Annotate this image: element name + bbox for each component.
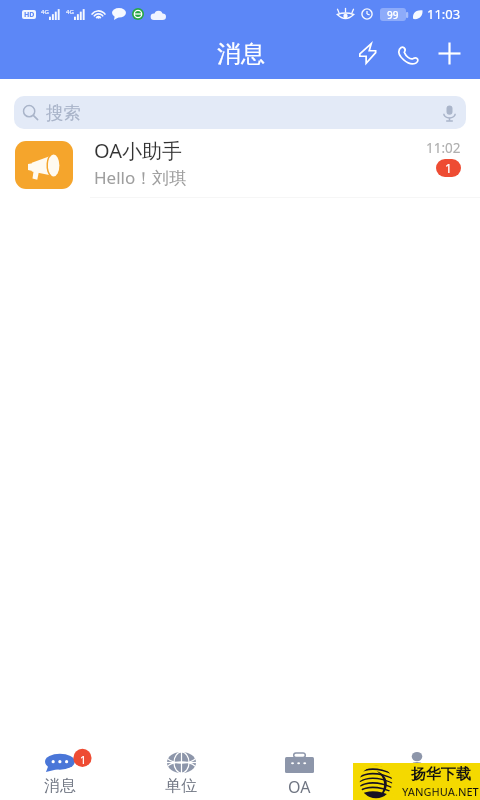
staticText: 11:03 bbox=[427, 5, 461, 23]
staticText: 扬华下载 bbox=[411, 765, 471, 784]
staticText: 搜索 bbox=[46, 102, 81, 124]
staticText: 4G bbox=[66, 8, 74, 16]
staticText: 11:02 bbox=[426, 139, 461, 157]
button[interactable]: 单位 bbox=[126, 738, 236, 800]
staticText: 1 bbox=[445, 160, 452, 176]
staticText: 消息 bbox=[44, 776, 76, 796]
staticText: 1 bbox=[80, 752, 87, 767]
staticText: Hello！刘琪 bbox=[94, 166, 187, 189]
button[interactable]: OA小助手 bbox=[0, 132, 480, 198]
staticText: 消息 bbox=[217, 39, 265, 69]
staticText: HD bbox=[24, 10, 35, 19]
staticText: OA小助手 bbox=[94, 137, 182, 164]
staticText: 我的 bbox=[401, 776, 433, 796]
button[interactable]: OA bbox=[244, 738, 354, 800]
button[interactable]: 1 bbox=[8, 738, 118, 800]
staticText: 单位 bbox=[165, 776, 197, 796]
staticText: YANGHUA.NET bbox=[402, 784, 479, 799]
staticText: 4G bbox=[41, 8, 49, 16]
button[interactable]: 搜索 bbox=[14, 96, 466, 129]
staticText: 99 bbox=[387, 8, 399, 21]
button[interactable]: Add bbox=[429, 28, 470, 79]
button[interactable]: Quick actions bbox=[347, 28, 388, 79]
button[interactable]: 我的 bbox=[362, 738, 472, 800]
button[interactable]: Call bbox=[388, 28, 429, 79]
button[interactable]: Voice search bbox=[432, 98, 466, 128]
staticText: OA bbox=[288, 776, 311, 798]
